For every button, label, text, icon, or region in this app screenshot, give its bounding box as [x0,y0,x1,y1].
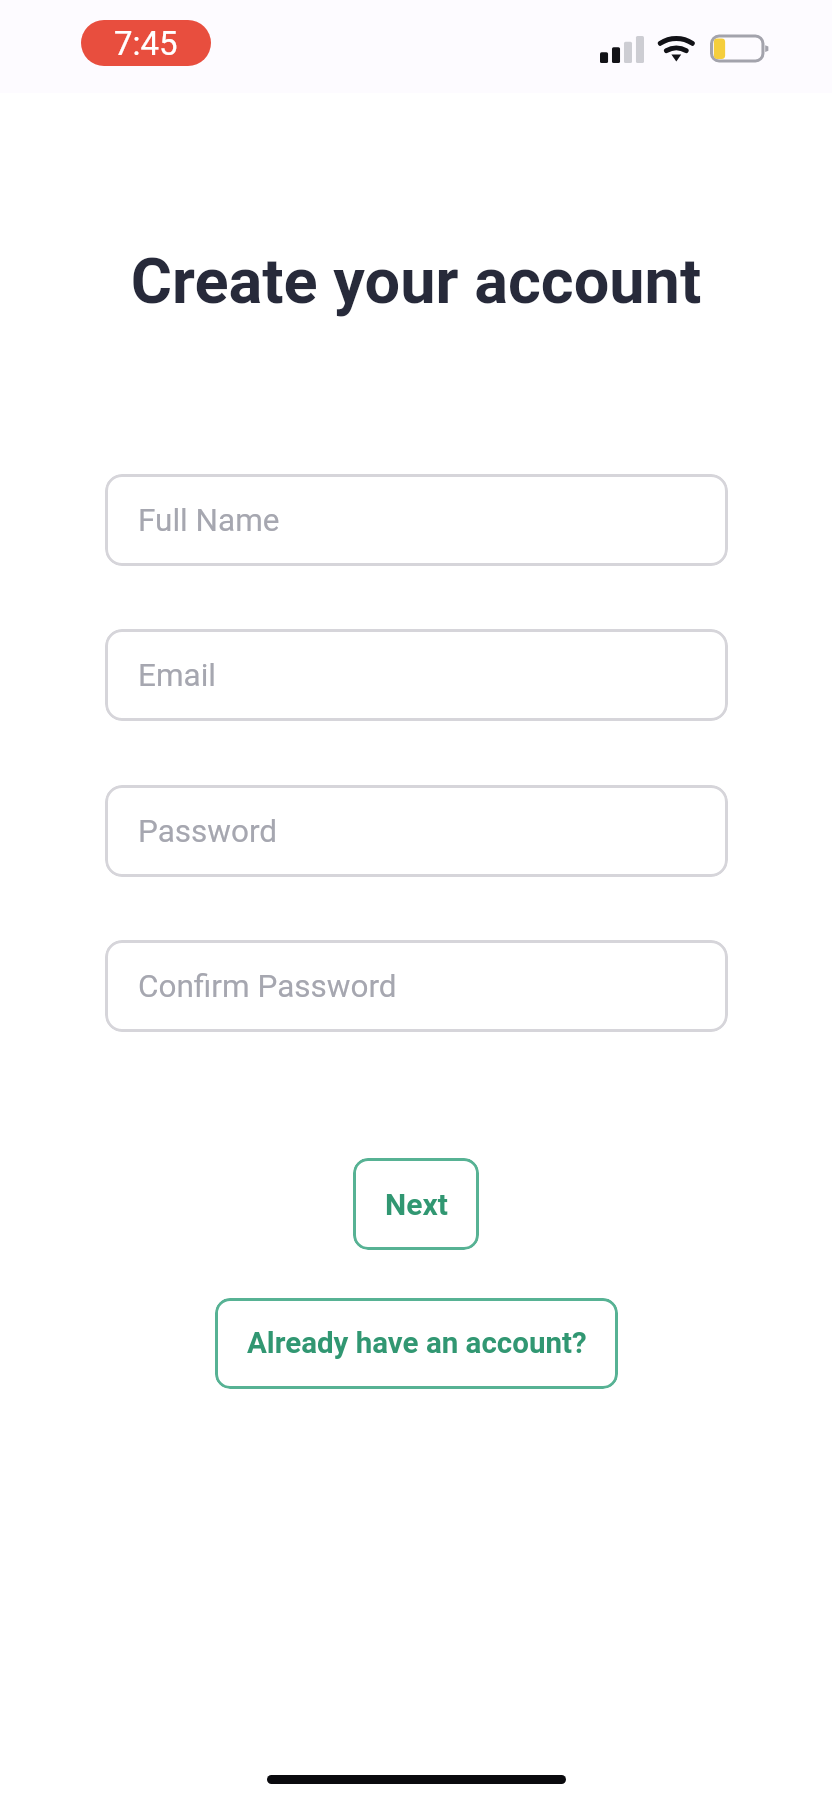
staticText: Create your account [0,245,832,319]
button[interactable]: Full Name [105,474,728,566]
other: Battery low [710,34,771,63]
staticText: Full Name [138,502,280,539]
button[interactable]: Email [105,629,728,721]
button[interactable]: Next [353,1158,479,1250]
staticText: Email [138,657,216,694]
staticText: Already have an account? [247,1326,587,1361]
staticText: Next [385,1187,448,1222]
button[interactable]: Confirm Password [105,940,728,1032]
other: Wi-Fi connected [657,34,695,63]
staticText: Confirm Password [138,968,397,1005]
other: Cellular signal strength [600,36,644,63]
staticText: 7:45 [114,24,178,63]
button[interactable]: Already have an account? [215,1298,618,1389]
staticText: Password [138,813,278,850]
button[interactable]: Password [105,785,728,877]
